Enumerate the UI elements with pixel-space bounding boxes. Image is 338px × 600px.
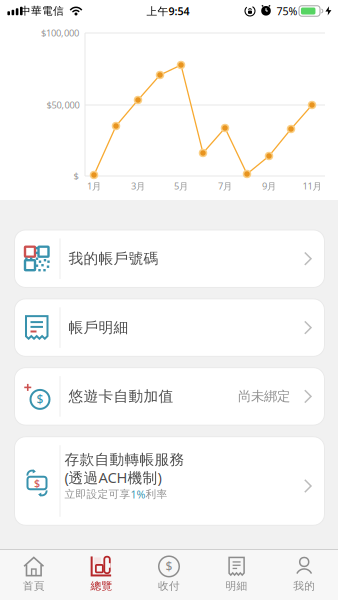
staticText: 75% — [276, 4, 297, 18]
staticText: 7月 — [218, 180, 232, 192]
staticText: 帳戶明細 — [68, 319, 128, 337]
staticText: 總覽 — [90, 579, 112, 592]
staticText: 利率 — [145, 488, 167, 501]
button[interactable]: 首頁 — [0, 549, 68, 600]
staticText: (透過ACH機制) — [64, 468, 161, 487]
staticText: 存款自動轉帳服務 — [64, 451, 184, 469]
staticText: 我的 — [293, 579, 315, 592]
button[interactable]: $ — [14, 437, 324, 525]
staticText: 收付 — [158, 579, 180, 592]
staticText: 尚未綁定 — [238, 388, 290, 405]
staticText: 1% — [130, 487, 145, 501]
button[interactable]: $ — [14, 368, 324, 425]
button[interactable]: 帳戶明細 — [14, 299, 324, 356]
staticText: 9月 — [262, 180, 276, 192]
staticText: $50,000 — [46, 99, 79, 111]
staticText: 3月 — [131, 180, 145, 192]
staticText: 11月 — [302, 180, 321, 192]
staticText: 悠遊卡自動加值 — [68, 387, 173, 405]
staticText: $ — [36, 391, 43, 407]
staticText: 上午9:54 — [146, 4, 189, 18]
staticText: 我的帳戶號碼 — [68, 250, 158, 268]
staticText: $ — [73, 170, 78, 182]
button[interactable]: 總覽 — [68, 549, 135, 600]
staticText: 首頁 — [23, 579, 45, 592]
staticText: $ — [165, 558, 172, 574]
staticText: 中華電信 — [20, 4, 64, 17]
staticText: 立即設定可享 — [64, 488, 130, 501]
staticText: $100,000 — [41, 27, 79, 39]
button[interactable]: 我的帳戶號碼 — [14, 230, 324, 287]
staticText: $ — [34, 476, 40, 490]
button[interactable]: 我的 — [270, 549, 338, 600]
button[interactable]: $ — [135, 549, 203, 600]
button[interactable]: 明細 — [203, 549, 270, 600]
staticText: 1月 — [87, 180, 101, 192]
staticText: 明細 — [226, 579, 248, 592]
staticText: 5月 — [174, 180, 188, 192]
